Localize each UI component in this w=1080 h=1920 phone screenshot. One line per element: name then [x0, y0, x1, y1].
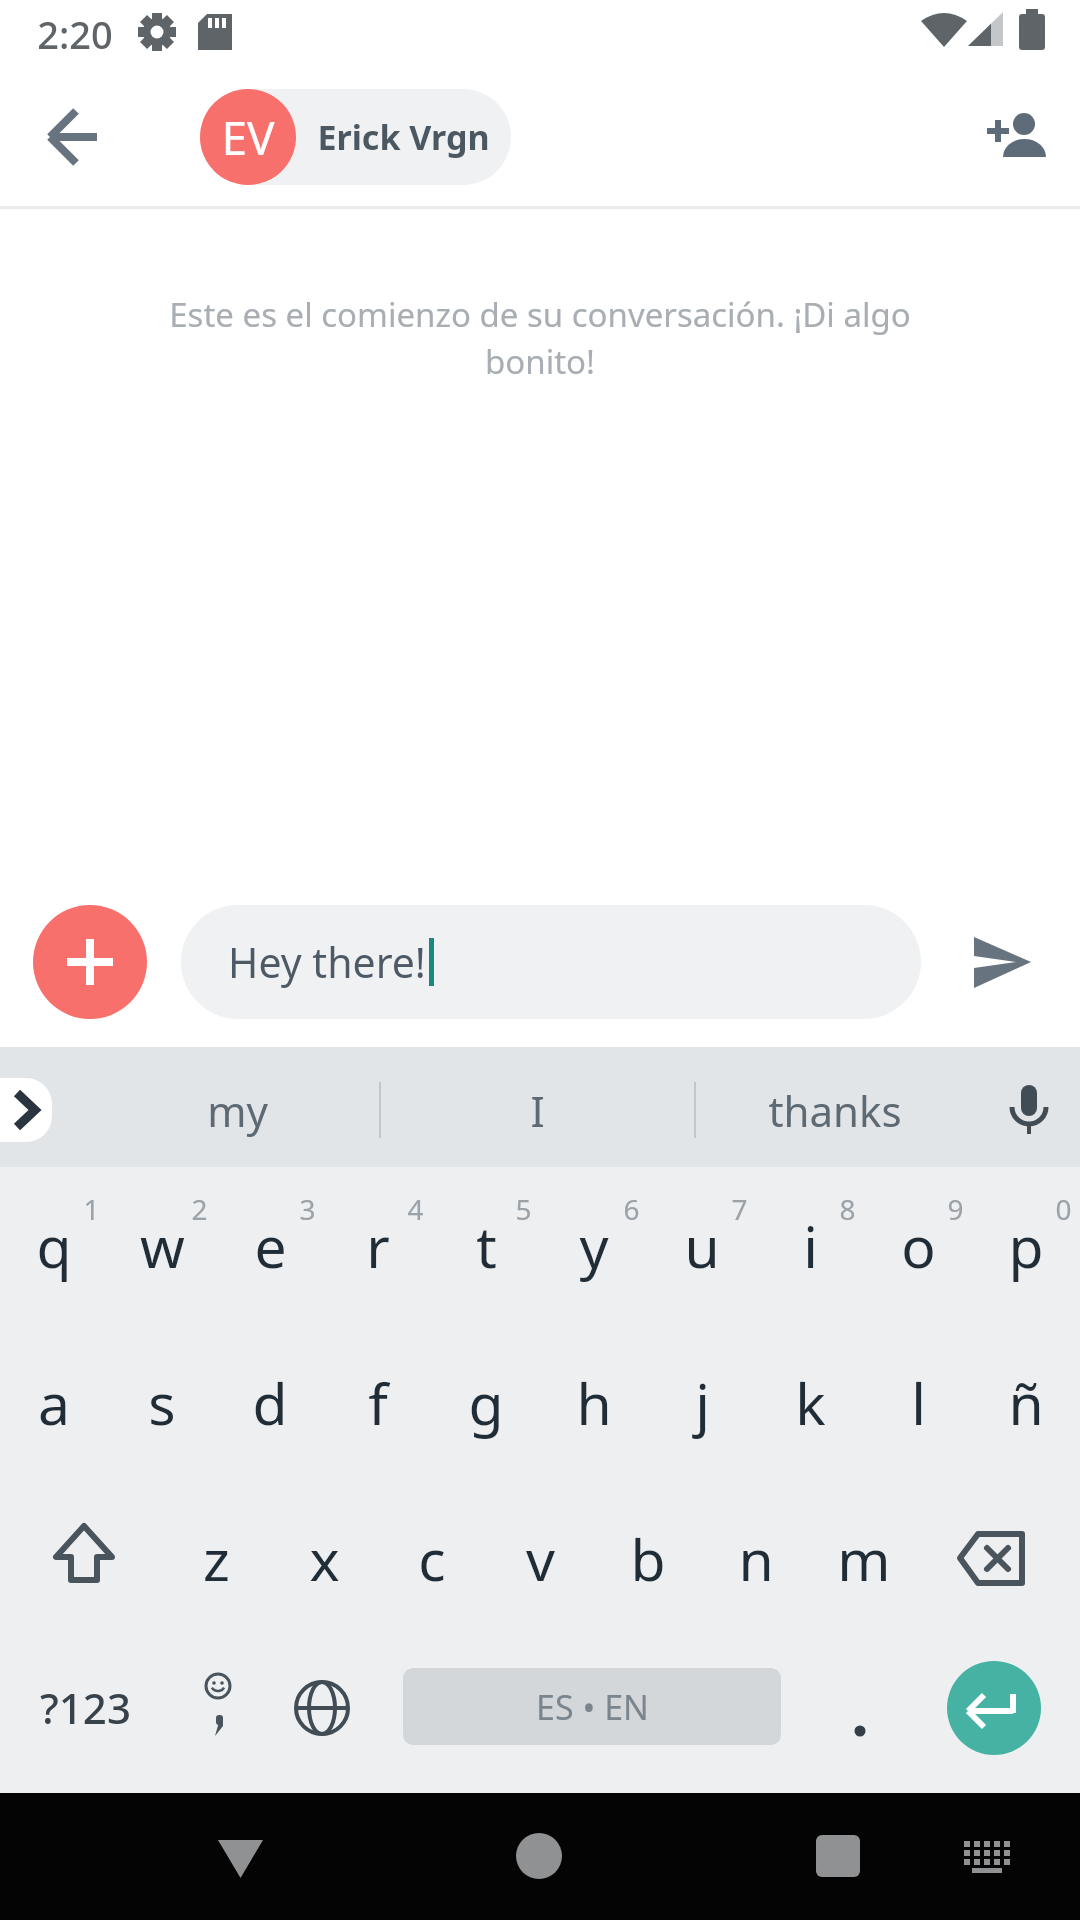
staticText: b — [630, 1520, 666, 1598]
staticText: ñ — [1008, 1364, 1044, 1442]
button[interactable] — [20, 1500, 148, 1616]
button[interactable]: j — [648, 1324, 756, 1481]
button[interactable]: my — [157, 1080, 317, 1140]
staticText: w — [140, 1207, 185, 1285]
staticText: Hey there! — [228, 934, 426, 990]
button[interactable] — [816, 1835, 860, 1877]
staticText: u — [684, 1207, 720, 1285]
button[interactable] — [188, 1660, 252, 1754]
staticText: h — [576, 1364, 612, 1442]
button[interactable] — [516, 1833, 562, 1879]
staticText: a — [38, 1364, 70, 1442]
button[interactable] — [947, 1661, 1041, 1755]
button[interactable]: l — [864, 1324, 972, 1481]
button[interactable]: n — [702, 1480, 810, 1637]
button[interactable] — [965, 95, 1065, 180]
button[interactable]: b — [594, 1480, 702, 1637]
staticText: ES • EN — [536, 1684, 649, 1730]
button[interactable]: ES • EN — [403, 1668, 781, 1745]
staticText: l — [911, 1364, 926, 1442]
button[interactable] — [930, 1510, 1060, 1610]
staticText: ?123 — [40, 1679, 131, 1736]
button[interactable] — [950, 917, 1050, 1007]
button[interactable] — [958, 1836, 1018, 1880]
button[interactable]: h — [540, 1324, 648, 1481]
staticText: 0 — [1055, 1190, 1072, 1220]
staticText: I — [530, 1082, 545, 1139]
button[interactable]: x — [270, 1480, 378, 1637]
staticText: s — [148, 1364, 176, 1442]
staticText: i — [803, 1207, 818, 1285]
button[interactable]: s — [108, 1324, 216, 1481]
button[interactable]: w — [108, 1167, 216, 1324]
button[interactable]: ?123 — [15, 1667, 155, 1747]
button[interactable] — [292, 1678, 352, 1738]
button[interactable] — [830, 1690, 890, 1760]
staticText: r — [366, 1207, 390, 1285]
staticText: z — [203, 1520, 230, 1598]
staticText: thanks — [768, 1082, 902, 1139]
button[interactable]: z — [162, 1480, 270, 1637]
staticText: g — [468, 1364, 504, 1442]
button[interactable]: d — [216, 1324, 324, 1481]
staticText: 2:20 — [37, 8, 113, 56]
button[interactable]: u — [648, 1167, 756, 1324]
button[interactable]: r — [324, 1167, 432, 1324]
staticText: n — [738, 1520, 774, 1598]
button[interactable] — [205, 1825, 275, 1890]
staticText: o — [901, 1207, 936, 1285]
staticText: k — [795, 1364, 826, 1442]
button[interactable]: o — [864, 1167, 972, 1324]
staticText: v — [526, 1520, 555, 1598]
button[interactable]: Hey there! — [181, 905, 921, 1019]
staticText: j — [695, 1364, 710, 1442]
button[interactable]: I — [457, 1080, 617, 1140]
button[interactable]: q — [0, 1167, 108, 1324]
button[interactable]: p — [972, 1167, 1080, 1324]
button[interactable]: g — [432, 1324, 540, 1481]
staticText: 4 — [407, 1190, 424, 1220]
staticText: 2 — [191, 1190, 208, 1220]
staticText: p — [1008, 1207, 1044, 1285]
button[interactable]: v — [486, 1480, 594, 1637]
button[interactable]: a — [0, 1324, 108, 1481]
button[interactable]: m — [810, 1480, 918, 1637]
button[interactable]: k — [756, 1324, 864, 1481]
staticText: my — [207, 1082, 268, 1139]
button[interactable] — [999, 1080, 1059, 1140]
button[interactable]: thanks — [755, 1080, 915, 1140]
staticText: 9 — [947, 1190, 964, 1220]
staticText: c — [418, 1520, 446, 1598]
button[interactable]: ñ — [972, 1324, 1080, 1481]
button[interactable]: f — [324, 1324, 432, 1481]
button[interactable]: c — [378, 1480, 486, 1637]
button[interactable]: t — [432, 1167, 540, 1324]
button[interactable]: y — [540, 1167, 648, 1324]
staticText: y — [579, 1207, 609, 1285]
button[interactable]: i — [756, 1167, 864, 1324]
staticText: Este es el comienzo de su conversación. … — [169, 292, 911, 384]
staticText: 5 — [515, 1190, 532, 1220]
staticText: 3 — [299, 1190, 316, 1220]
staticText: 1 — [83, 1190, 100, 1220]
staticText: m — [837, 1520, 891, 1598]
button[interactable]: e — [216, 1167, 324, 1324]
staticText: d — [252, 1364, 288, 1442]
button[interactable] — [25, 100, 125, 175]
staticText: f — [368, 1364, 388, 1442]
button[interactable] — [33, 905, 147, 1019]
staticText: Erick Vrgn — [317, 114, 490, 160]
staticText: 8 — [839, 1190, 856, 1220]
staticText: 6 — [623, 1190, 640, 1220]
button[interactable] — [0, 1078, 52, 1142]
staticText: t — [476, 1207, 497, 1285]
staticText: EV — [221, 106, 275, 169]
staticText: 7 — [731, 1190, 748, 1220]
staticText: e — [254, 1207, 287, 1285]
button[interactable] — [200, 89, 511, 185]
staticText: q — [36, 1207, 72, 1285]
staticText: x — [309, 1520, 340, 1598]
